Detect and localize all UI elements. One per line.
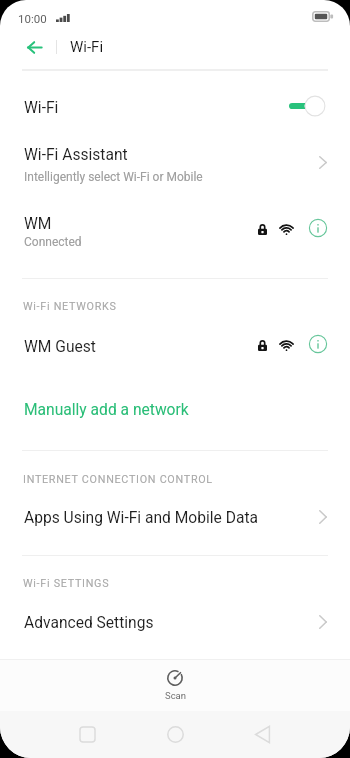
staticText: WM Guest: [24, 338, 96, 356]
staticText: Wi-Fi: [70, 38, 104, 56]
button[interactable]: WM Guest: [0, 328, 350, 364]
staticText: 10:00: [18, 12, 47, 25]
button[interactable]: Wi-Fi: [0, 88, 350, 124]
button[interactable]: Recent apps: [67, 714, 108, 755]
button[interactable]: Network details: [309, 335, 327, 353]
staticText: Manually add a network: [24, 401, 189, 419]
button[interactable]: Apps Using Wi-Fi and Mobile Data: [0, 500, 350, 534]
staticText: Intelligently select Wi-Fi or Mobile: [24, 170, 203, 184]
button[interactable]: WM: [0, 205, 350, 255]
button[interactable]: Network details: [309, 219, 327, 237]
staticText: Connected: [24, 235, 82, 249]
button[interactable]: Back: [17, 30, 51, 64]
staticText: INTERNET CONNECTION CONTROL: [23, 473, 213, 486]
button[interactable]: Wi-Fi Assistant: [0, 138, 350, 190]
button[interactable]: Home: [155, 714, 196, 755]
staticText: Wi-Fi: [24, 99, 59, 117]
staticText: Wi-Fi NETWORKS: [23, 300, 117, 313]
staticText: Advanced Settings: [24, 614, 154, 632]
staticText: Apps Using Wi-Fi and Mobile Data: [24, 509, 259, 527]
staticText: Wi-Fi Assistant: [24, 146, 128, 164]
button[interactable]: Manually add a network: [0, 392, 350, 426]
staticText: WM: [24, 215, 52, 233]
button[interactable]: Back: [242, 714, 283, 755]
button[interactable]: Scan: [149, 664, 201, 708]
staticText: Scan: [165, 690, 187, 701]
staticText: Wi-Fi SETTINGS: [23, 577, 110, 590]
button[interactable]: Advanced Settings: [0, 605, 350, 639]
